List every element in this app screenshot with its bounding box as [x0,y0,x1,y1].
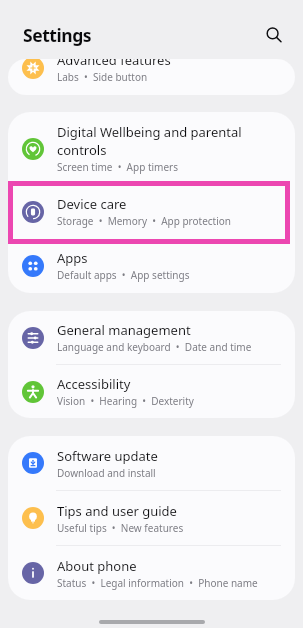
button[interactable]: Search [260,20,290,50]
button[interactable]: Accessibility [8,365,295,418]
staticText: Accessibility [57,375,131,393]
staticText: Language and keyboard • Date and time [57,340,252,354]
staticText: Device care [57,195,127,213]
staticText: Advanced features [57,59,171,69]
staticText: Tips and user guide [57,502,177,520]
staticText: General management [57,321,191,339]
staticText: Apps [57,249,88,267]
button[interactable]: Software update [8,436,295,490]
staticText: Default apps • App settings [57,268,190,282]
staticText: Download and install [57,466,156,480]
staticText: Status • Legal information • Phone name [57,576,258,590]
staticText: Screen time • App timers [57,160,179,174]
button[interactable]: About phone [8,546,295,600]
staticText: Storage • Memory • App protection [57,214,232,228]
staticText: Settings [23,23,92,47]
staticText: About phone [57,557,137,575]
button[interactable]: Advanced features [8,59,295,94]
button[interactable]: Apps [8,238,295,293]
staticText: Software update [57,447,158,465]
staticText: Useful tips • New features [57,521,184,535]
staticText: Digital Wellbeing and parental controls [57,123,242,159]
button[interactable]: Device care [8,185,295,238]
button[interactable]: Tips and user guide [8,491,295,545]
staticText: Vision • Hearing • Dexterity [57,394,194,408]
button[interactable]: Digital Wellbeing and parental controls [8,112,295,185]
button[interactable]: General management [8,311,295,364]
staticText: Labs • Side button [57,70,148,84]
